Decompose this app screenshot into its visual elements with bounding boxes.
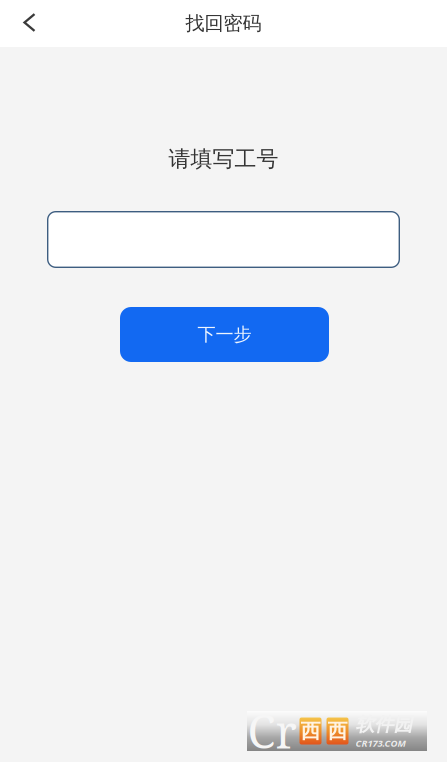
staticText: 请填写工号 — [168, 145, 278, 173]
staticText: 下一步 — [197, 323, 251, 346]
button[interactable]: 下一步 — [120, 307, 329, 362]
button[interactable]: Back — [0, 0, 59, 47]
staticText: 西 — [327, 718, 347, 744]
staticText: Cr — [247, 700, 296, 762]
staticText: 找回密码 — [185, 11, 261, 35]
staticText: 软件园 — [355, 712, 412, 736]
staticText: 西 — [300, 718, 320, 744]
staticText: CR173.COM — [355, 736, 405, 749]
